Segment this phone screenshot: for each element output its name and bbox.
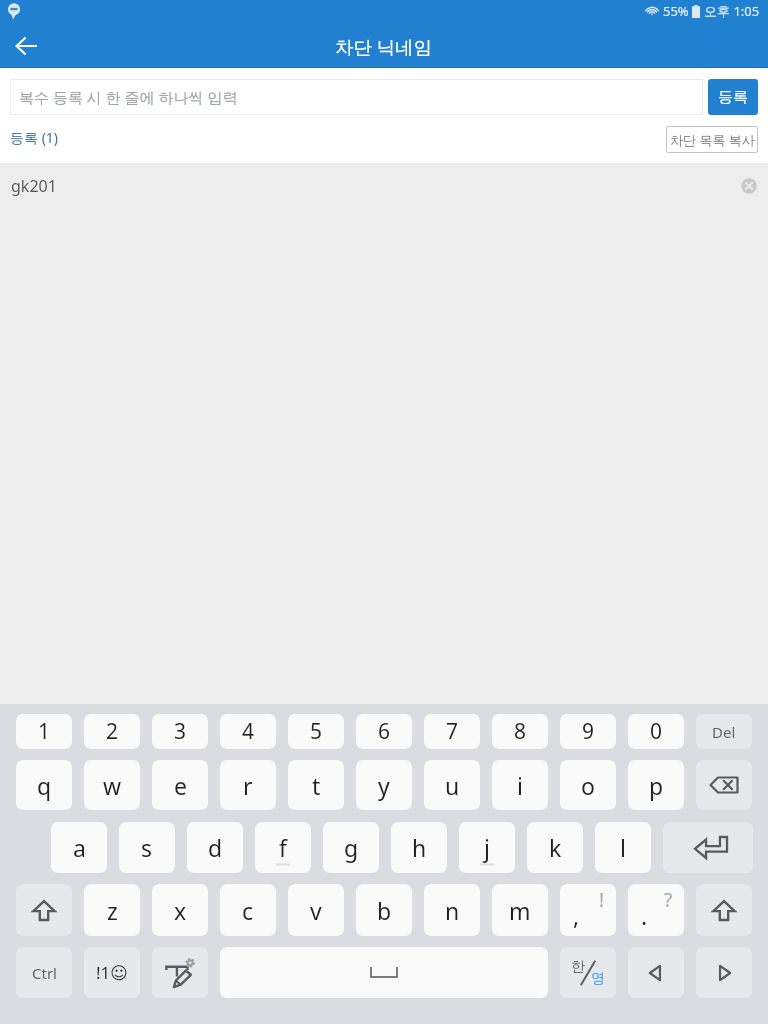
button[interactable]: u <box>424 760 480 810</box>
button[interactable]: x <box>152 884 208 936</box>
staticText: a <box>73 832 86 863</box>
button[interactable]: l <box>595 822 651 873</box>
button[interactable]: v <box>288 884 344 936</box>
staticText: 8 <box>514 717 527 746</box>
staticText: 3 <box>174 717 187 746</box>
button[interactable]: 차단 목록 복사 <box>666 126 758 153</box>
button[interactable]: 5 <box>288 714 344 749</box>
staticText: n <box>445 895 460 926</box>
button[interactable]: m <box>492 884 548 936</box>
button[interactable]: Enter <box>663 822 753 873</box>
button[interactable]: o <box>560 760 616 810</box>
button[interactable]: . <box>628 884 684 936</box>
staticText: m <box>509 895 531 926</box>
staticText: Del <box>712 722 736 742</box>
button[interactable]: Language <box>560 947 616 998</box>
button[interactable]: 9 <box>560 714 616 749</box>
staticText: u <box>445 770 460 801</box>
staticText: , <box>573 900 580 931</box>
button[interactable]: e <box>152 760 208 810</box>
staticText: b <box>377 895 392 926</box>
button[interactable]: r <box>220 760 276 810</box>
staticText: ? <box>664 887 673 913</box>
button[interactable]: 8 <box>492 714 548 749</box>
button[interactable]: z <box>84 884 140 936</box>
button[interactable]: c <box>220 884 276 936</box>
staticText: 오후 1:05 <box>704 2 760 20</box>
staticText: g <box>344 832 359 863</box>
button[interactable]: q <box>16 760 72 810</box>
staticText: 영 <box>591 970 605 988</box>
staticText: 4 <box>242 717 255 746</box>
button[interactable]: g <box>323 822 379 873</box>
staticText: d <box>208 832 223 863</box>
button[interactable]: h <box>391 822 447 873</box>
button[interactable]: 등록 (1) <box>10 128 59 147</box>
staticText: 복수 등록 시 한 줄에 하나씩 입력 <box>19 87 238 107</box>
button[interactable]: w <box>84 760 140 810</box>
button[interactable]: Ctrl <box>16 947 72 998</box>
button[interactable]: p <box>628 760 684 810</box>
button[interactable]: 2 <box>84 714 140 749</box>
staticText: 6 <box>378 717 391 746</box>
button[interactable]: Del <box>696 714 752 749</box>
button[interactable]: d <box>187 822 243 873</box>
staticText: x <box>174 895 187 926</box>
button[interactable]: 1 <box>16 714 72 749</box>
button[interactable]: k <box>527 822 583 873</box>
staticText: l <box>620 832 626 863</box>
staticText: q <box>37 770 52 801</box>
button[interactable]: a <box>51 822 107 873</box>
button[interactable]: Remove <box>741 178 757 194</box>
button[interactable]: 등록 <box>708 79 758 115</box>
button[interactable]: Space <box>220 947 548 998</box>
button[interactable]: Left <box>628 947 684 998</box>
button[interactable]: f <box>255 822 311 873</box>
staticText: c <box>242 895 254 926</box>
button[interactable]: Back <box>0 22 48 68</box>
staticText: w <box>103 770 122 801</box>
button[interactable]: 6 <box>356 714 412 749</box>
button[interactable]: Handwriting <box>152 947 208 998</box>
button[interactable]: gk201 <box>0 163 768 208</box>
staticText: e <box>174 770 187 801</box>
button[interactable]: Backspace <box>696 760 752 810</box>
button[interactable]: i <box>492 760 548 810</box>
button[interactable]: Shift <box>696 884 752 936</box>
staticText: 9 <box>582 717 595 746</box>
staticText: 1 <box>38 717 51 746</box>
staticText: t <box>312 770 321 801</box>
button[interactable]: s <box>119 822 175 873</box>
staticText: s <box>141 832 153 863</box>
staticText: 한 <box>571 958 585 976</box>
staticText: y <box>378 770 390 801</box>
staticText: ! <box>599 887 605 913</box>
staticText: f <box>279 832 287 863</box>
button[interactable]: y <box>356 760 412 810</box>
button[interactable]: Shift <box>16 884 72 936</box>
staticText: 5 <box>310 717 323 746</box>
button[interactable]: 0 <box>628 714 684 749</box>
button[interactable]: Right <box>696 947 752 998</box>
button[interactable]: n <box>424 884 480 936</box>
button[interactable]: , <box>560 884 616 936</box>
button[interactable]: !1☺ <box>84 947 140 998</box>
staticText: i <box>517 770 523 801</box>
staticText: Ctrl <box>32 963 57 983</box>
staticText: !1☺ <box>96 961 129 984</box>
button[interactable]: 4 <box>220 714 276 749</box>
staticText: 등록 (1) <box>10 128 59 147</box>
button[interactable]: 3 <box>152 714 208 749</box>
staticText: 2 <box>106 717 119 746</box>
button[interactable]: t <box>288 760 344 810</box>
staticText: 0 <box>650 717 663 746</box>
staticText: 55% <box>663 2 689 20</box>
staticText: 차단 닉네임 <box>335 34 433 59</box>
button[interactable]: j <box>459 822 515 873</box>
button[interactable]: b <box>356 884 412 936</box>
staticText: . <box>641 900 648 931</box>
button[interactable]: 7 <box>424 714 480 749</box>
button[interactable]: 복수 등록 시 한 줄에 하나씩 입력 <box>10 79 703 115</box>
staticText: v <box>310 895 322 926</box>
staticText: k <box>549 832 562 863</box>
